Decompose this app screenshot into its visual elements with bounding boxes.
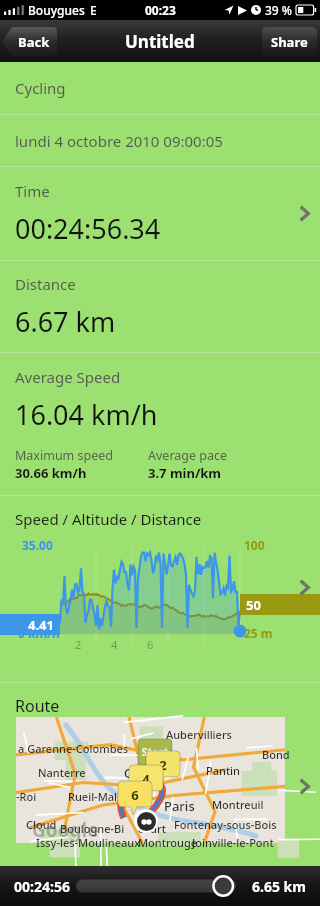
staticText: 00:24:56.34 — [15, 210, 161, 247]
staticText: Distance — [15, 274, 76, 294]
staticText: Average pace — [148, 447, 228, 464]
staticText: 50 — [246, 596, 261, 614]
staticText: Joinville-le-Pont — [192, 835, 274, 850]
staticText: Montreuil — [212, 797, 264, 812]
staticText: Issy-les-Moulineaux — [36, 835, 141, 850]
staticText: Bond — [262, 747, 290, 762]
staticText: Time — [15, 181, 50, 201]
staticText: Share — [271, 33, 308, 51]
staticText: 30.66 km/h — [15, 464, 87, 482]
staticText: 00:24:56 — [14, 877, 70, 896]
staticText: Cycling — [15, 78, 66, 98]
button[interactable]: Back — [2, 27, 57, 56]
staticText: 16.04 km/h — [15, 396, 158, 433]
staticText: Maximum speed — [15, 447, 114, 464]
staticText: Google — [32, 817, 99, 843]
staticText: -Roi — [16, 789, 37, 804]
staticText: Back — [18, 33, 50, 51]
staticText: 6.65 km — [252, 877, 306, 896]
staticText: Rueil-Malm — [68, 789, 128, 804]
staticText: 100 — [244, 537, 265, 553]
staticText: 39 % — [265, 2, 293, 18]
staticText: Nanterre — [38, 765, 86, 780]
staticText: Cloud — [26, 817, 57, 832]
staticText: lundi 4 octobre 2010 09:00:05 — [15, 131, 223, 151]
staticText: Fontenay-sous-Bois — [174, 817, 277, 832]
staticText: 0 km/h — [18, 625, 60, 641]
staticText: 6 — [131, 786, 139, 804]
staticText: court — [138, 821, 166, 836]
staticText: 00:23 — [145, 2, 176, 18]
staticText: 3.7 min/km — [148, 464, 222, 482]
button[interactable]: Route — [0, 683, 320, 866]
staticText: 25 m — [244, 625, 273, 641]
staticText: Pantin — [206, 763, 240, 778]
staticText: Boulogne-Bi — [60, 821, 125, 836]
button[interactable]: lundi 4 octobre 2010 09:00:05 — [0, 115, 320, 166]
button[interactable]: Speed / Altitude / Distance — [0, 496, 320, 682]
staticText: Average Speed — [15, 367, 121, 387]
button[interactable]: Cycling — [0, 62, 320, 114]
staticText: 6.67 km — [15, 303, 116, 340]
staticText: E — [90, 2, 97, 18]
staticText: 4.41 — [28, 616, 54, 634]
staticText: Cou — [124, 765, 147, 781]
button[interactable]: Average Speed — [0, 353, 320, 495]
staticText: Paris — [164, 797, 195, 815]
button[interactable]: Time — [0, 167, 320, 260]
staticText: 6 — [147, 637, 154, 652]
button[interactable]: Playback scrubber — [76, 874, 236, 898]
staticText: 2 — [75, 637, 82, 652]
staticText: Untitled — [125, 30, 195, 53]
staticText: Speed / Altitude / Distance — [15, 509, 202, 529]
staticText: 2 — [159, 756, 167, 774]
staticText: 4 — [142, 770, 150, 788]
staticText: Bouygues — [28, 2, 85, 18]
staticText: Start — [141, 744, 169, 759]
staticText: 4 — [111, 637, 118, 652]
staticText: 35.00 — [22, 537, 53, 553]
button[interactable]: Distance — [0, 261, 320, 352]
staticText: a Garenne-Colombes — [18, 741, 129, 756]
button[interactable]: Share — [262, 27, 317, 56]
staticText: Aubervilliers — [166, 727, 232, 742]
staticText: Montrouge — [138, 835, 198, 850]
staticText: Route — [15, 695, 60, 717]
